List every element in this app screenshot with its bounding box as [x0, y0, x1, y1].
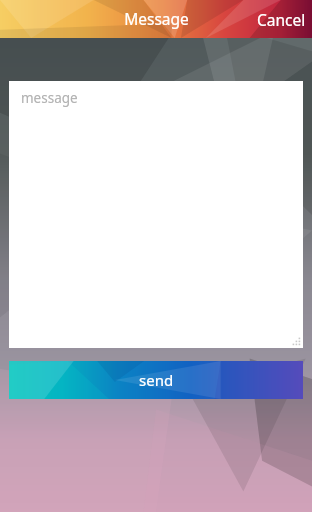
staticText: message: [21, 89, 78, 107]
button[interactable]: send: [9, 361, 303, 399]
staticText: Cancel: [257, 9, 306, 30]
staticText: Message: [124, 8, 189, 29]
staticText: send: [139, 370, 174, 390]
button[interactable]: message: [9, 81, 303, 348]
button[interactable]: Cancel: [257, 9, 306, 30]
